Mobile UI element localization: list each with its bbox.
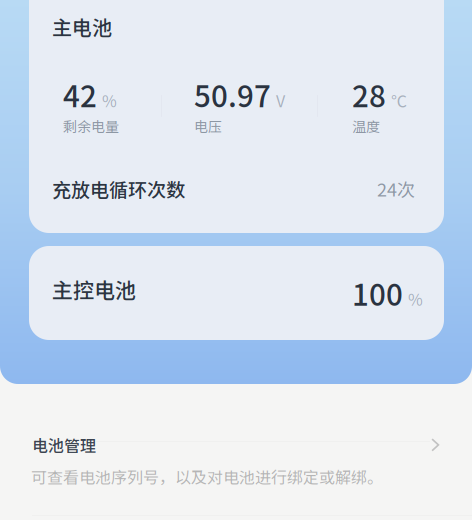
staticText: 主控电池	[52, 274, 136, 304]
staticText: %	[408, 287, 423, 310]
staticText: 28	[352, 73, 386, 116]
staticText: %	[102, 89, 117, 112]
staticText: 42	[63, 73, 97, 116]
staticText: 电压	[194, 116, 222, 136]
staticText: 温度	[352, 116, 380, 136]
staticText: 可查看电池序列号，以及对电池进行绑定或解绑。	[31, 465, 383, 488]
staticText: 24次	[377, 176, 415, 202]
staticText: 电池管理	[32, 433, 96, 457]
staticText: 100	[352, 272, 403, 314]
staticText: 主电池	[52, 12, 112, 41]
staticText: V	[276, 89, 285, 112]
staticText: 剩余电量	[63, 116, 119, 136]
button[interactable]: 主控电池	[29, 246, 444, 340]
button[interactable]: 电池管理	[0, 430, 472, 460]
staticText: ℃	[391, 89, 407, 112]
staticText: 50.97	[194, 73, 271, 116]
staticText: 充放电循环次数	[52, 175, 185, 202]
